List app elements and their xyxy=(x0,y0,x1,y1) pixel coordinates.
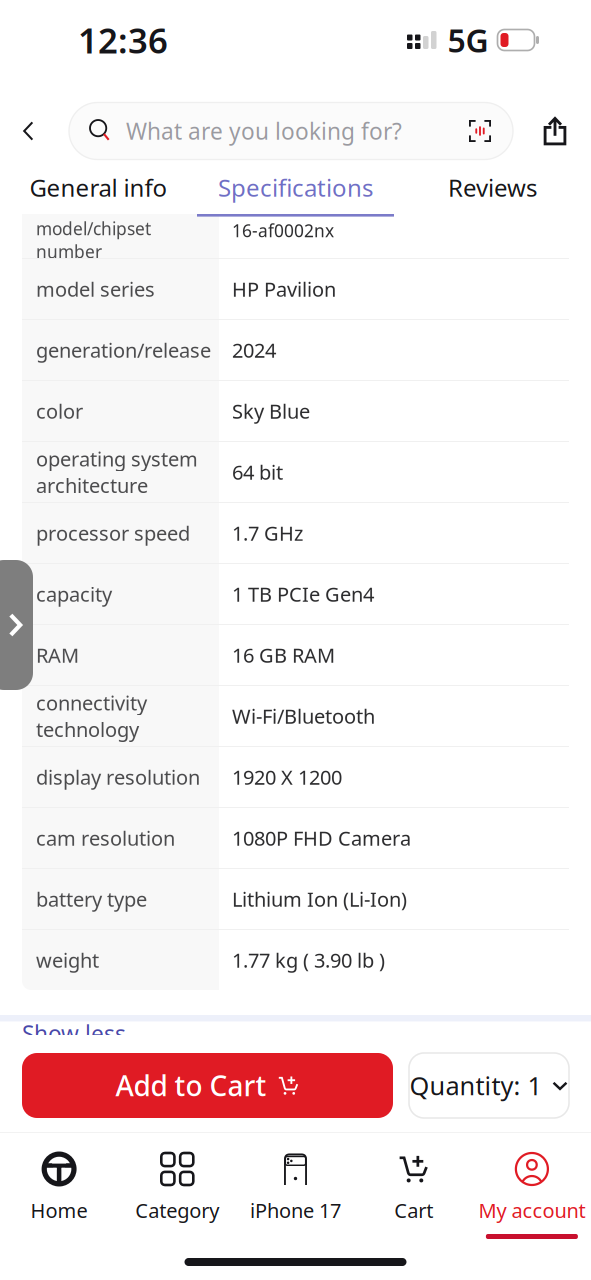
button[interactable]: Quantity: 1 xyxy=(409,1053,569,1118)
staticText: operating system architecture xyxy=(36,445,198,498)
button[interactable]: Open side panel xyxy=(0,560,33,690)
staticText: 1080P FHD Camera xyxy=(232,825,411,851)
button[interactable]: General info xyxy=(0,161,197,217)
staticText: 1.77 kg ( 3.90 lb ) xyxy=(232,947,385,973)
staticText: Quantity: 1 xyxy=(409,1069,541,1102)
staticText: 1 TB PCIe Gen4 xyxy=(232,581,374,607)
button[interactable]: Scan barcode xyxy=(463,114,497,148)
staticText: model series xyxy=(36,276,155,302)
staticText: iPhone 17 xyxy=(250,1197,341,1224)
staticText: capacity xyxy=(36,581,112,607)
staticText: Cart xyxy=(394,1197,433,1224)
button[interactable]: Show less xyxy=(22,1018,126,1048)
staticText: 12:36 xyxy=(78,17,168,63)
staticText: connectivity technology xyxy=(36,689,147,742)
staticText: Specifications xyxy=(218,172,373,203)
staticText: color xyxy=(36,398,83,424)
staticText: 5G xyxy=(447,19,488,61)
button[interactable]: Category xyxy=(118,1151,236,1239)
button[interactable]: Home xyxy=(0,1151,118,1239)
staticText: battery type xyxy=(36,886,147,912)
button[interactable]: My account xyxy=(473,1151,591,1239)
staticText: Wi-Fi/Bluetooth xyxy=(232,703,375,729)
button[interactable]: iPhone 17 xyxy=(236,1151,355,1239)
staticText: cam resolution xyxy=(36,825,175,851)
staticText: display resolution xyxy=(36,764,200,790)
staticText: 1920 X 1200 xyxy=(232,764,342,790)
button[interactable]: Back xyxy=(13,105,45,157)
staticText: generation/release xyxy=(36,337,211,363)
staticText: Category xyxy=(135,1197,219,1224)
button[interactable]: Add to Cart xyxy=(22,1053,393,1118)
staticText: Lithium Ion (Li-Ion) xyxy=(232,886,407,912)
staticText: RAM xyxy=(36,642,79,668)
staticText: processor speed xyxy=(36,520,190,546)
staticText: 1.7 GHz xyxy=(232,520,303,546)
staticText: Reviews xyxy=(448,172,537,203)
staticText: What are you looking for? xyxy=(126,116,402,146)
staticText: Sky Blue xyxy=(232,398,310,424)
staticText: weight xyxy=(36,947,99,973)
staticText: HP Pavilion xyxy=(232,276,336,302)
staticText: model/chipset number xyxy=(36,217,151,263)
button[interactable]: Reviews xyxy=(394,161,591,217)
staticText: 2024 xyxy=(232,337,276,363)
staticText: Home xyxy=(31,1197,88,1224)
staticText: My account xyxy=(478,1197,585,1224)
button[interactable]: Specifications xyxy=(197,161,394,217)
staticText: Add to Cart xyxy=(115,1067,266,1104)
staticText: Show less xyxy=(22,1018,126,1048)
button[interactable]: Share xyxy=(535,106,575,156)
staticText: 16 GB RAM xyxy=(232,642,335,668)
staticText: General info xyxy=(29,172,167,203)
staticText: 64 bit xyxy=(232,459,283,485)
button[interactable]: Cart xyxy=(355,1151,473,1239)
staticText: 16-af0002nx xyxy=(232,219,334,242)
